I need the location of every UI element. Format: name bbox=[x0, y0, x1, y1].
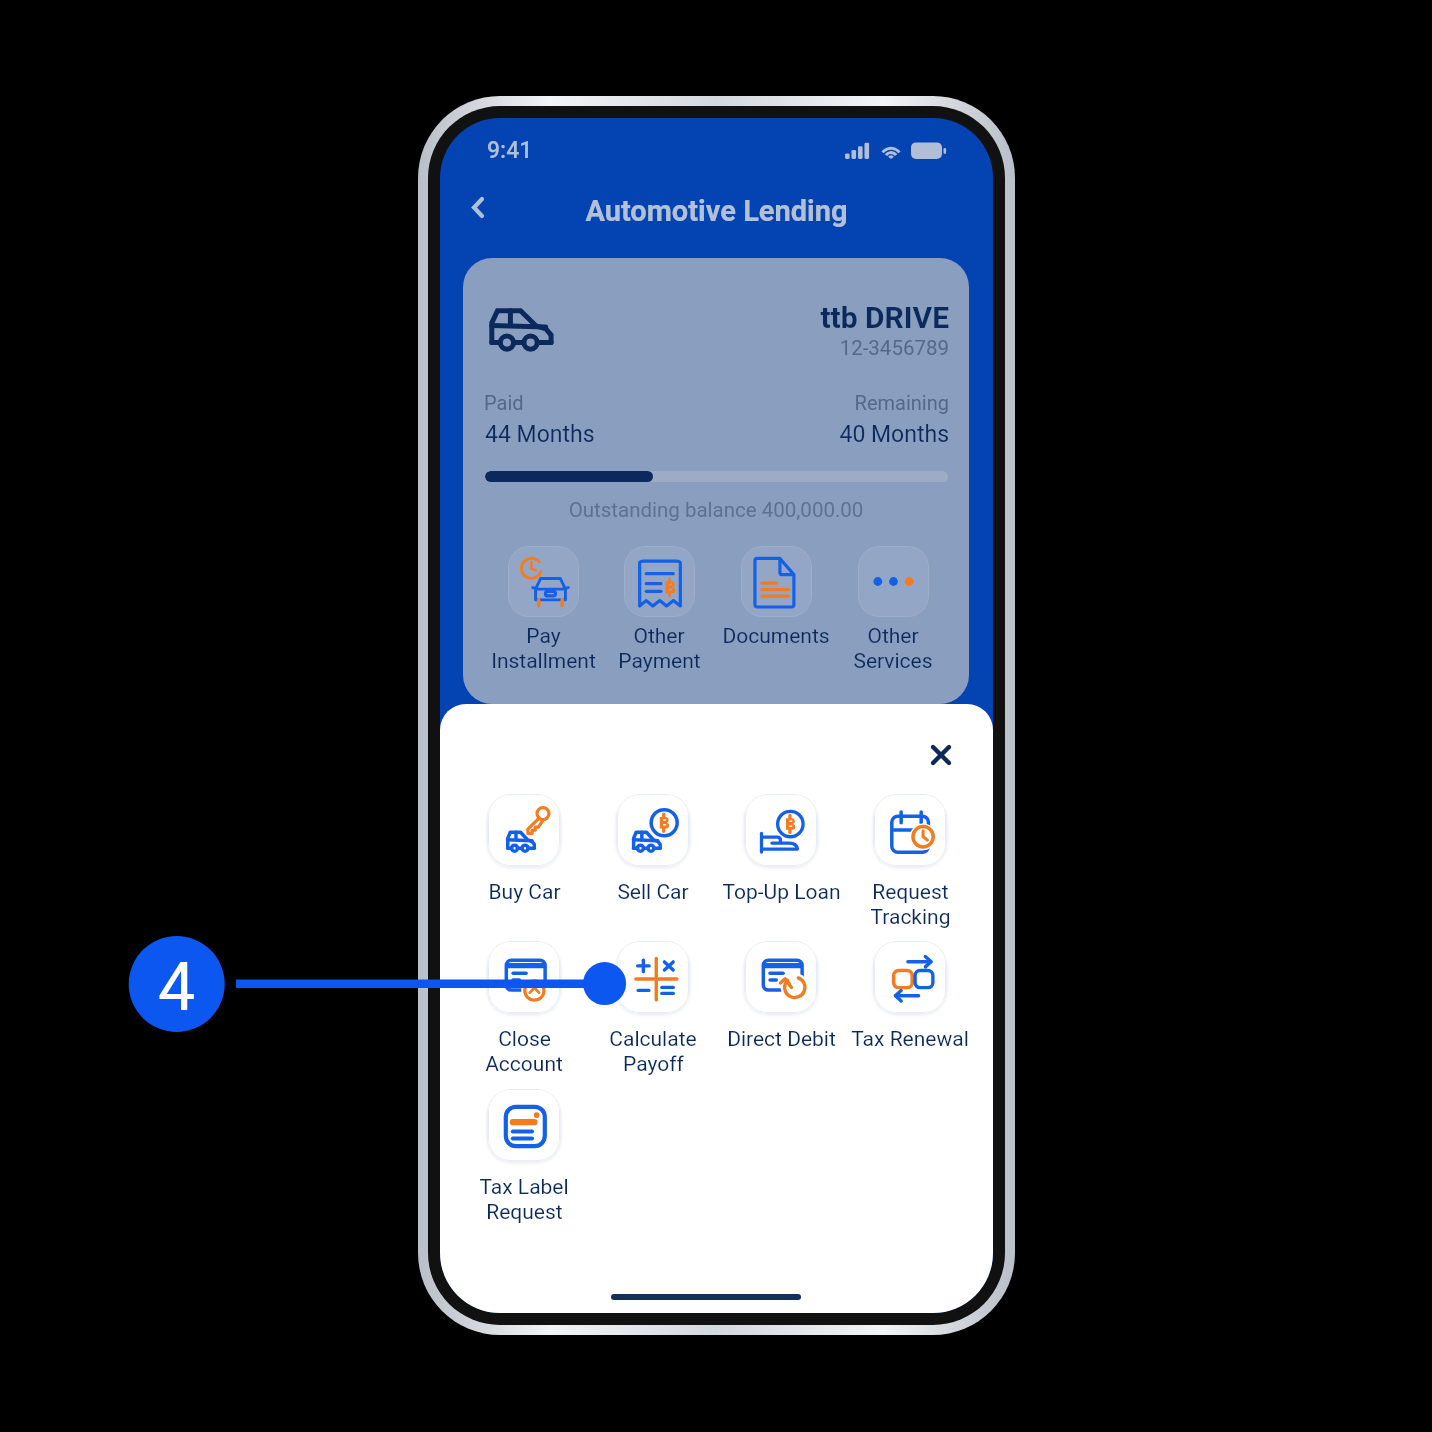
staticText: Account bbox=[485, 1052, 563, 1077]
staticText: Tax Renewal bbox=[851, 1027, 969, 1052]
staticText: Direct Debit bbox=[727, 1027, 836, 1052]
staticText: Pay bbox=[526, 624, 561, 649]
button[interactable]: 4 bbox=[129, 939, 225, 1035]
staticText: Other bbox=[633, 624, 685, 649]
button[interactable]: Other bbox=[584, 546, 734, 674]
staticText: Services bbox=[853, 649, 933, 674]
button[interactable]: Pay bbox=[468, 546, 618, 674]
button[interactable]: Top-Up Loan bbox=[696, 792, 866, 905]
button[interactable]: Calculate bbox=[568, 939, 738, 1077]
staticText: Outstanding balance 400,000.00 bbox=[463, 498, 969, 522]
staticText: Payoff bbox=[623, 1052, 684, 1077]
staticText: Documents bbox=[722, 624, 830, 649]
button[interactable]: Direct Debit bbox=[696, 939, 866, 1052]
staticText: Buy Car bbox=[488, 880, 561, 905]
staticText: Tax Label bbox=[479, 1175, 569, 1200]
button[interactable]: Tax Label bbox=[440, 1087, 609, 1225]
button[interactable]: Close bbox=[440, 939, 609, 1077]
button[interactable]: Tax Renewal bbox=[825, 939, 993, 1052]
button[interactable]: ttb DRIVE bbox=[463, 258, 969, 704]
staticText: Payment bbox=[618, 649, 701, 674]
button[interactable]: Sell Car bbox=[568, 792, 738, 905]
staticText: 40 Months bbox=[463, 421, 949, 448]
staticText: Sell Car bbox=[617, 880, 689, 905]
staticText: 12-3456789 bbox=[463, 336, 949, 360]
button[interactable]: Request bbox=[825, 792, 993, 930]
staticText: Calculate bbox=[609, 1027, 697, 1052]
staticText: 9:41 bbox=[487, 137, 533, 164]
staticText: Remaining bbox=[463, 391, 949, 414]
staticText: Automotive Lending bbox=[440, 194, 993, 228]
button[interactable]: Back bbox=[452, 180, 508, 236]
staticText: Paid bbox=[484, 391, 524, 414]
staticText: Close bbox=[498, 1027, 551, 1052]
button[interactable]: Documents bbox=[701, 546, 851, 649]
staticText: Top-Up Loan bbox=[722, 880, 841, 905]
staticText: 4 bbox=[158, 949, 196, 1026]
button[interactable]: Other bbox=[818, 546, 968, 674]
button[interactable]: Close bbox=[916, 730, 966, 780]
staticText: Request bbox=[486, 1200, 563, 1225]
staticText: Installment bbox=[491, 649, 596, 674]
staticText: Other bbox=[867, 624, 919, 649]
staticText: ttb DRIVE bbox=[463, 300, 949, 335]
staticText: Tracking bbox=[870, 905, 951, 930]
button[interactable]: Buy Car bbox=[440, 792, 609, 905]
staticText: Request bbox=[872, 880, 949, 905]
staticText: 44 Months bbox=[485, 421, 595, 448]
